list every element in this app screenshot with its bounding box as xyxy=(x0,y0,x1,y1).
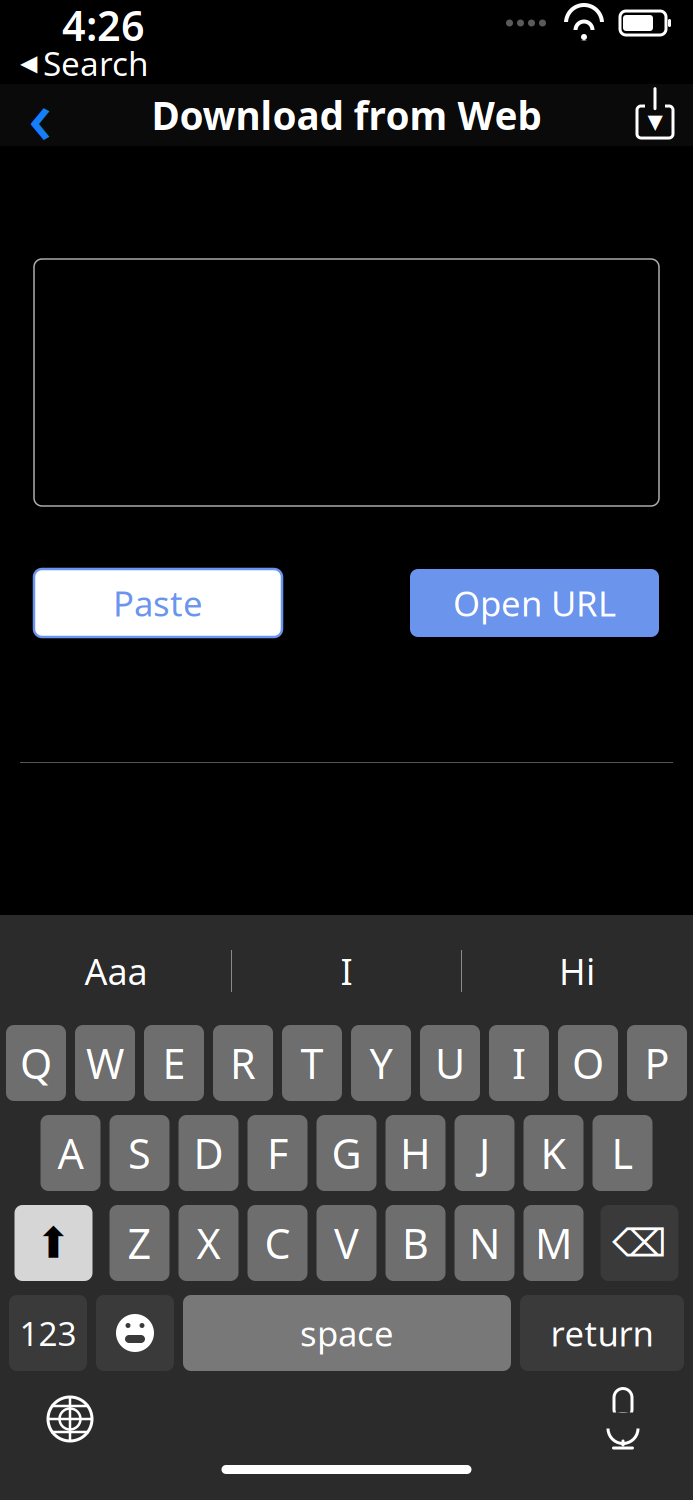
staticText: ‹ xyxy=(28,65,52,165)
staticText: W xyxy=(86,1036,124,1090)
staticText: Open URL xyxy=(453,580,616,626)
staticText: Aaa xyxy=(84,947,147,995)
staticText: 4:26 xyxy=(62,0,145,52)
button[interactable]: A xyxy=(40,1115,100,1191)
button[interactable]: space xyxy=(183,1295,511,1371)
staticText: E xyxy=(162,1036,185,1090)
button[interactable]: I xyxy=(232,927,461,1015)
button[interactable]: F xyxy=(247,1115,307,1191)
staticText: ⌫ xyxy=(612,1221,667,1265)
button[interactable]: Dictation xyxy=(595,1391,651,1447)
staticText: I xyxy=(340,947,352,995)
button[interactable]: E xyxy=(144,1025,204,1101)
button[interactable]: C xyxy=(247,1205,307,1281)
button[interactable]: N xyxy=(454,1205,514,1281)
staticText: ◀ xyxy=(20,50,37,76)
button[interactable]: I xyxy=(489,1025,549,1101)
staticText: Q xyxy=(20,1036,52,1090)
staticText: J xyxy=(479,1126,490,1180)
staticText: ▼ xyxy=(647,110,662,133)
staticText: S xyxy=(128,1126,151,1180)
staticText: Paste xyxy=(113,580,203,626)
button[interactable]: S xyxy=(109,1115,169,1191)
staticText: ⬆ xyxy=(35,1219,71,1267)
staticText: Search xyxy=(43,41,149,85)
button[interactable]: R xyxy=(213,1025,273,1101)
staticText: Download from Web xyxy=(151,89,541,141)
button[interactable]: W xyxy=(75,1025,135,1101)
staticText: H xyxy=(400,1126,431,1180)
staticText: 123 xyxy=(19,1311,76,1355)
button[interactable]: Next keyboard xyxy=(42,1391,98,1447)
button[interactable]: Delete xyxy=(600,1205,678,1281)
button[interactable]: M xyxy=(523,1205,583,1281)
button[interactable]: G xyxy=(316,1115,376,1191)
staticText: N xyxy=(469,1216,500,1270)
button[interactable]: D xyxy=(178,1115,238,1191)
button[interactable]: Q xyxy=(6,1025,66,1101)
staticText: Hi xyxy=(559,947,595,995)
button[interactable]: X xyxy=(178,1205,238,1281)
button[interactable]: Emoji xyxy=(96,1295,174,1371)
button[interactable]: H xyxy=(385,1115,445,1191)
staticText: T xyxy=(300,1036,323,1090)
button[interactable]: V xyxy=(316,1205,376,1281)
button[interactable]: L xyxy=(592,1115,652,1191)
button[interactable]: Aaa xyxy=(1,927,231,1015)
button[interactable]: O xyxy=(558,1025,618,1101)
staticText: M xyxy=(535,1216,572,1270)
staticText: D xyxy=(193,1126,223,1180)
button[interactable]: K xyxy=(523,1115,583,1191)
staticText: B xyxy=(402,1216,429,1270)
button[interactable]: T xyxy=(282,1025,342,1101)
button[interactable]: B xyxy=(385,1205,445,1281)
staticText: F xyxy=(267,1126,288,1180)
staticText: X xyxy=(196,1216,220,1270)
button[interactable]: Open URL xyxy=(410,569,659,637)
staticText: Z xyxy=(127,1216,151,1270)
button[interactable]: Paste xyxy=(34,569,282,637)
button[interactable]: Y xyxy=(351,1025,411,1101)
staticText: R xyxy=(230,1036,256,1090)
button[interactable]: Z xyxy=(109,1205,169,1281)
staticText: Y xyxy=(369,1036,392,1090)
staticText: C xyxy=(264,1216,290,1270)
staticText: L xyxy=(611,1126,633,1180)
staticText: K xyxy=(540,1126,566,1180)
staticText: U xyxy=(435,1036,465,1090)
staticText: I xyxy=(512,1036,526,1090)
button[interactable]: Hi xyxy=(462,927,692,1015)
button[interactable]: U xyxy=(420,1025,480,1101)
staticText: space xyxy=(300,1310,394,1356)
staticText: P xyxy=(644,1036,669,1090)
staticText: return xyxy=(550,1310,653,1356)
button[interactable]: ◀ xyxy=(0,46,693,80)
button[interactable]: J xyxy=(454,1115,514,1191)
button[interactable]: 123 xyxy=(9,1295,87,1371)
button[interactable]: Download xyxy=(617,84,693,146)
staticText: V xyxy=(334,1216,359,1270)
staticText: A xyxy=(57,1126,83,1180)
button[interactable]: Shift xyxy=(14,1205,92,1281)
button[interactable]: P xyxy=(627,1025,687,1101)
button[interactable]: Back xyxy=(0,84,80,146)
button[interactable]: return xyxy=(520,1295,684,1371)
staticText: O xyxy=(572,1036,604,1090)
staticText: G xyxy=(331,1126,361,1180)
